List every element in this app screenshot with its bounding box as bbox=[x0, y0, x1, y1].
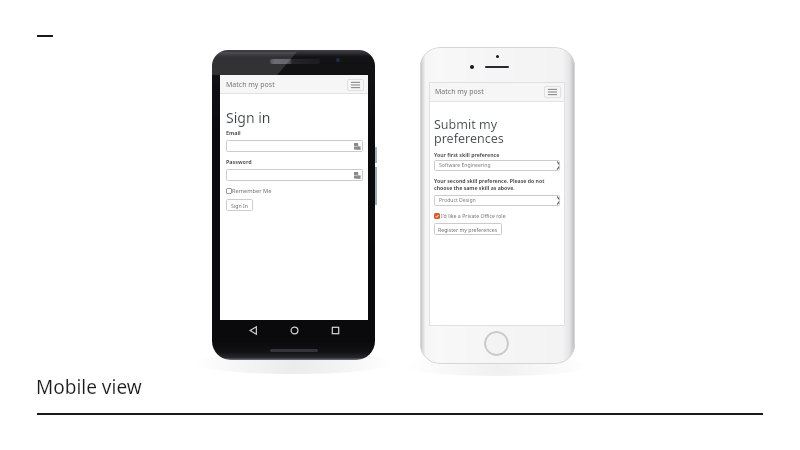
button[interactable]: Register my preferences bbox=[434, 223, 502, 235]
button[interactable]: Text field bbox=[226, 169, 363, 181]
button[interactable]: Product Design bbox=[434, 195, 560, 206]
button[interactable]: Home button bbox=[484, 331, 509, 356]
button[interactable]: Remember Me bbox=[226, 187, 272, 195]
staticText: Match my post bbox=[435, 87, 484, 97]
staticText: Register my preferences bbox=[438, 226, 498, 233]
staticText: Match my post bbox=[226, 80, 275, 90]
staticText: Password bbox=[226, 158, 252, 165]
staticText: Your first skill preference bbox=[434, 151, 500, 158]
staticText: I'd like a Private Office role bbox=[441, 212, 506, 219]
button[interactable]: Sign In bbox=[226, 199, 253, 211]
staticText: Product Design bbox=[439, 197, 476, 204]
button[interactable]: Text field bbox=[226, 140, 363, 152]
staticText: Sign in bbox=[226, 108, 271, 127]
button[interactable]: Software Engineering bbox=[434, 160, 560, 171]
staticText: Remember Me bbox=[232, 187, 272, 195]
button[interactable]: Home bbox=[289, 325, 300, 336]
button[interactable]: I'd like a Private Office role bbox=[434, 212, 506, 219]
button[interactable]: Back bbox=[248, 325, 259, 336]
button[interactable]: Menu bbox=[544, 86, 561, 98]
staticText: Submit my preferences bbox=[434, 116, 504, 146]
staticText: Your second skill preference. Please do … bbox=[434, 177, 545, 191]
staticText: Mobile view bbox=[36, 374, 142, 400]
staticText: Sign In bbox=[231, 202, 248, 209]
button[interactable]: Menu bbox=[347, 79, 364, 91]
staticText: Software Engineering bbox=[439, 162, 491, 169]
staticText: Email bbox=[226, 129, 241, 136]
button[interactable]: Recent apps bbox=[330, 325, 341, 336]
